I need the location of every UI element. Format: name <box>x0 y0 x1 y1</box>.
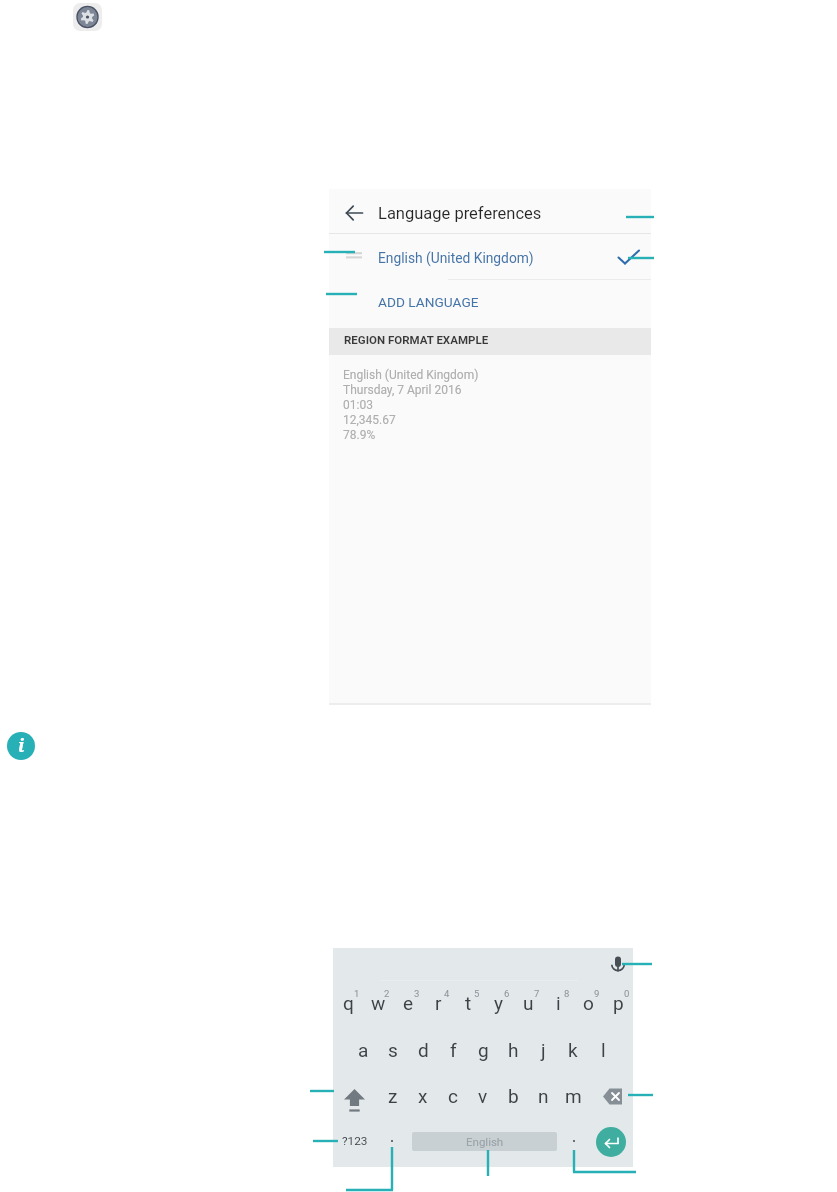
staticText: REGION FORMAT EXAMPLE <box>344 333 489 346</box>
staticText: 01:03 <box>343 398 373 412</box>
button[interactable]: q <box>333 987 363 1019</box>
button[interactable]: n <box>528 1080 558 1112</box>
button[interactable]: e <box>393 987 423 1019</box>
staticText: k <box>568 1039 578 1061</box>
button[interactable]: g <box>468 1034 498 1066</box>
button[interactable]: x <box>408 1080 438 1112</box>
staticText: i <box>556 992 561 1014</box>
button[interactable]: z <box>378 1080 408 1112</box>
staticText: m <box>565 1085 582 1107</box>
staticText: t <box>465 992 472 1014</box>
staticText: 2 <box>384 988 390 999</box>
button[interactable]: d <box>408 1034 438 1066</box>
staticText: d <box>418 1039 429 1061</box>
button[interactable]: Back <box>339 199 365 225</box>
staticText: b <box>508 1085 519 1107</box>
staticText: 0 <box>624 988 630 999</box>
button[interactable]: ADD LANGUAGE <box>329 280 651 328</box>
staticText: x <box>418 1085 428 1107</box>
button[interactable]: c <box>438 1080 468 1112</box>
staticText: u <box>523 992 534 1014</box>
staticText: i <box>18 733 25 758</box>
button[interactable]: i <box>543 987 573 1019</box>
button[interactable]: a <box>348 1034 378 1066</box>
button[interactable]: ?123 <box>337 1129 373 1153</box>
staticText: Thursday, 7 April 2016 <box>343 383 462 397</box>
staticText: 12,345.67 <box>343 413 396 427</box>
staticText: o <box>583 992 594 1014</box>
staticText: z <box>388 1085 398 1107</box>
staticText: 4 <box>444 988 450 999</box>
staticText: g <box>478 1039 489 1061</box>
staticText: ?123 <box>342 1134 368 1148</box>
button[interactable]: j <box>528 1034 558 1066</box>
staticText: a <box>358 1039 369 1061</box>
button[interactable]: Voice input <box>607 953 629 975</box>
button[interactable]: Backspace <box>597 1081 631 1111</box>
staticText: 6 <box>504 988 510 999</box>
button[interactable]: English (United Kingdom) <box>329 234 651 280</box>
staticText: j <box>541 1039 546 1061</box>
staticText: h <box>508 1039 519 1061</box>
button[interactable]: f <box>438 1034 468 1066</box>
staticText: Language preferences <box>378 204 542 223</box>
button[interactable]: m <box>558 1080 588 1112</box>
staticText: y <box>494 992 503 1014</box>
button[interactable]: s <box>378 1034 408 1066</box>
staticText: English (United Kingdom) <box>343 368 479 382</box>
button[interactable]: b <box>498 1080 528 1112</box>
staticText: e <box>403 992 414 1014</box>
staticText: 1 <box>354 988 360 999</box>
staticText: English (United Kingdom) <box>378 250 534 266</box>
staticText: 8 <box>564 988 570 999</box>
button[interactable]: v <box>468 1080 498 1112</box>
button[interactable]: t <box>453 987 483 1019</box>
staticText: v <box>478 1085 488 1107</box>
button[interactable]: o <box>573 987 603 1019</box>
staticText: w <box>371 992 386 1014</box>
button[interactable]: p <box>603 987 633 1019</box>
staticText: 5 <box>474 988 480 999</box>
staticText: n <box>538 1085 549 1107</box>
button[interactable]: Information note <box>7 732 35 760</box>
button[interactable]: Settings <box>73 3 102 31</box>
button[interactable]: k <box>558 1034 588 1066</box>
button[interactable]: Shift <box>338 1083 371 1115</box>
staticText: 9 <box>594 988 600 999</box>
button[interactable]: English <box>412 1132 557 1151</box>
staticText: r <box>435 992 442 1014</box>
staticText: q <box>343 992 354 1014</box>
button[interactable]: w <box>363 987 393 1019</box>
button[interactable]: u <box>513 987 543 1019</box>
staticText: 7 <box>534 988 540 999</box>
button[interactable]: h <box>498 1034 528 1066</box>
staticText: f <box>450 1039 457 1061</box>
staticText: ADD LANGUAGE <box>378 294 479 310</box>
staticText: c <box>448 1085 458 1107</box>
staticText: 3 <box>414 988 420 999</box>
staticText: s <box>388 1039 398 1061</box>
button[interactable]: Enter <box>596 1127 626 1157</box>
button[interactable]: y <box>483 987 513 1019</box>
staticText: p <box>613 992 624 1014</box>
button[interactable]: l <box>588 1034 618 1066</box>
button[interactable]: r <box>423 987 453 1019</box>
staticText: l <box>601 1039 606 1061</box>
staticText: English <box>466 1135 504 1148</box>
staticText: 78.9% <box>343 428 376 442</box>
